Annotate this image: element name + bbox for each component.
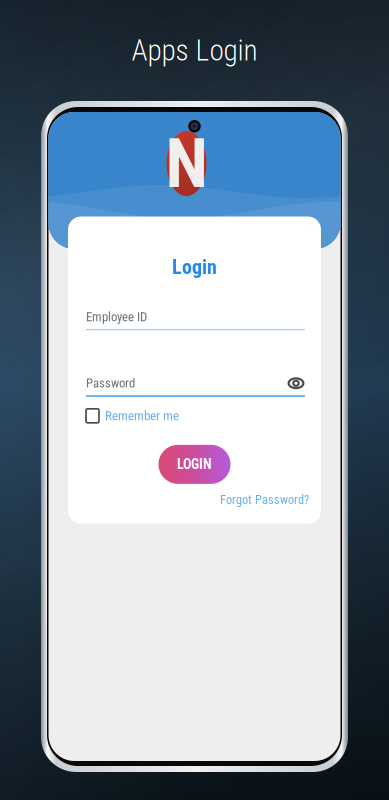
staticText: Forgot Password? xyxy=(220,492,309,507)
staticText: N xyxy=(165,123,207,204)
button[interactable]: Remember me xyxy=(86,406,303,426)
staticText: LOGIN xyxy=(177,456,212,472)
button[interactable]: LOGIN xyxy=(158,445,230,484)
staticText: Login xyxy=(172,255,217,279)
staticText: Remember me xyxy=(105,408,179,423)
staticText: Employee ID xyxy=(86,309,147,324)
staticText: Password xyxy=(86,376,135,391)
staticText: Apps Login xyxy=(131,33,257,68)
button[interactable]: Forgot Password? xyxy=(220,216,321,507)
button[interactable]: Show password xyxy=(287,376,305,390)
